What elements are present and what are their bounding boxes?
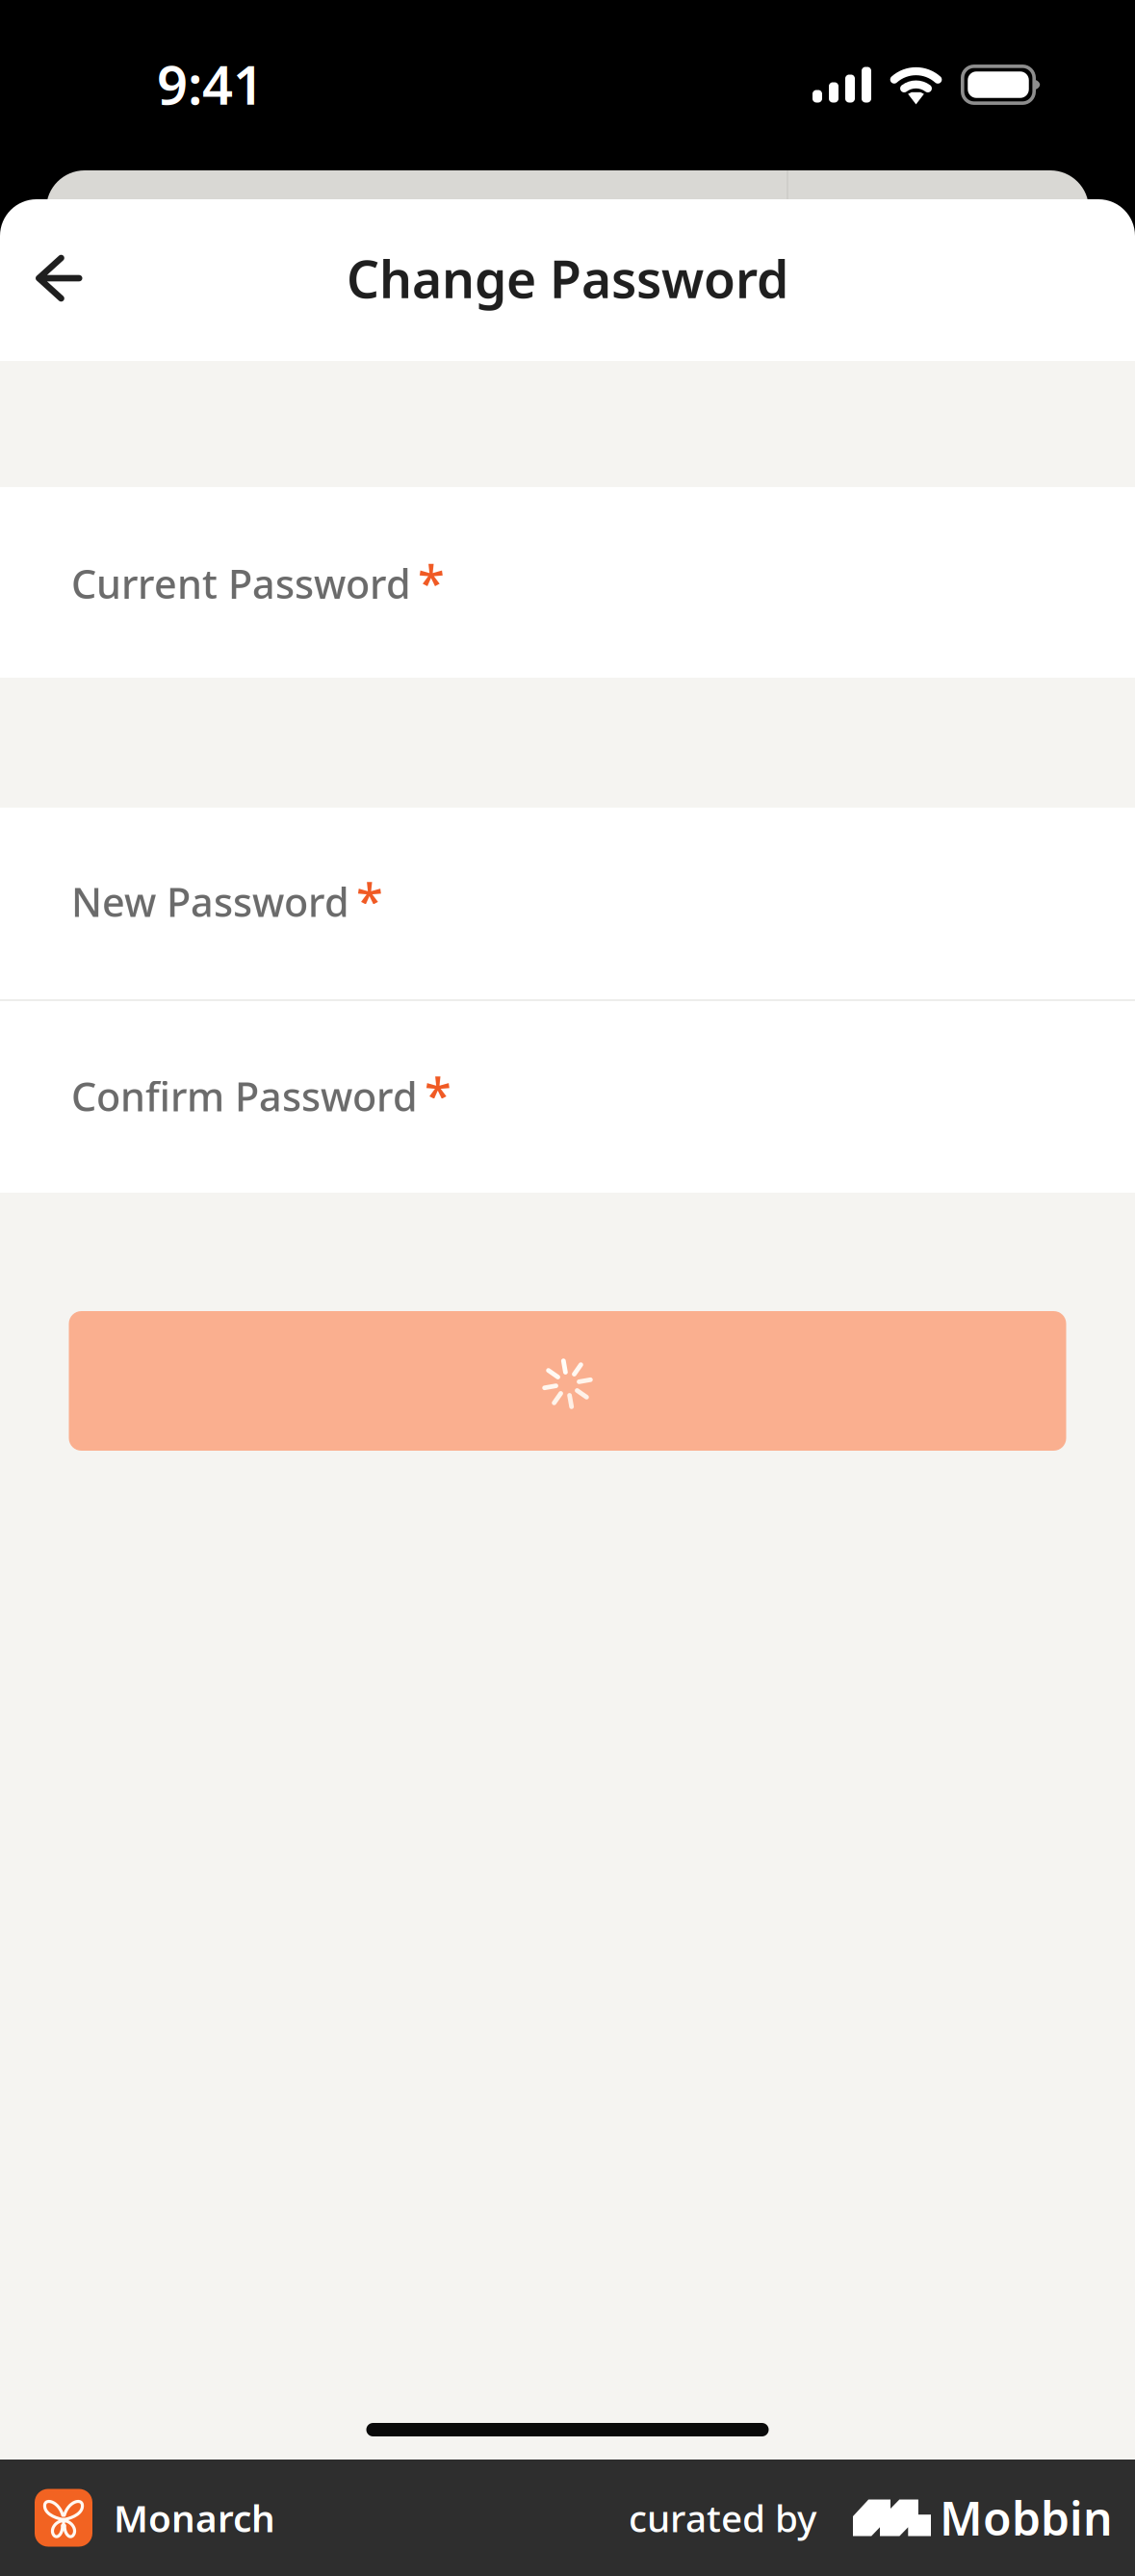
- staticText: Mobbin: [940, 2487, 1113, 2548]
- button[interactable]: Confirm Password: [0, 1001, 1135, 1193]
- button[interactable]: Back: [0, 214, 105, 346]
- staticText: *: [418, 549, 445, 614]
- staticText: New Password: [71, 875, 349, 928]
- staticText: Monarch: [114, 2493, 275, 2542]
- staticText: Confirm Password: [71, 1070, 418, 1122]
- staticText: *: [356, 867, 383, 932]
- staticText: Change Password: [347, 244, 788, 312]
- staticText: Current Password: [71, 557, 411, 610]
- button[interactable]: Current Password: [0, 487, 1135, 678]
- staticText: 9:41: [157, 48, 264, 120]
- staticText: curated by: [629, 2493, 816, 2542]
- button[interactable]: Update password — in progress: [69, 1311, 1066, 1451]
- button[interactable]: New Password: [0, 808, 1135, 999]
- staticText: *: [425, 1062, 451, 1126]
